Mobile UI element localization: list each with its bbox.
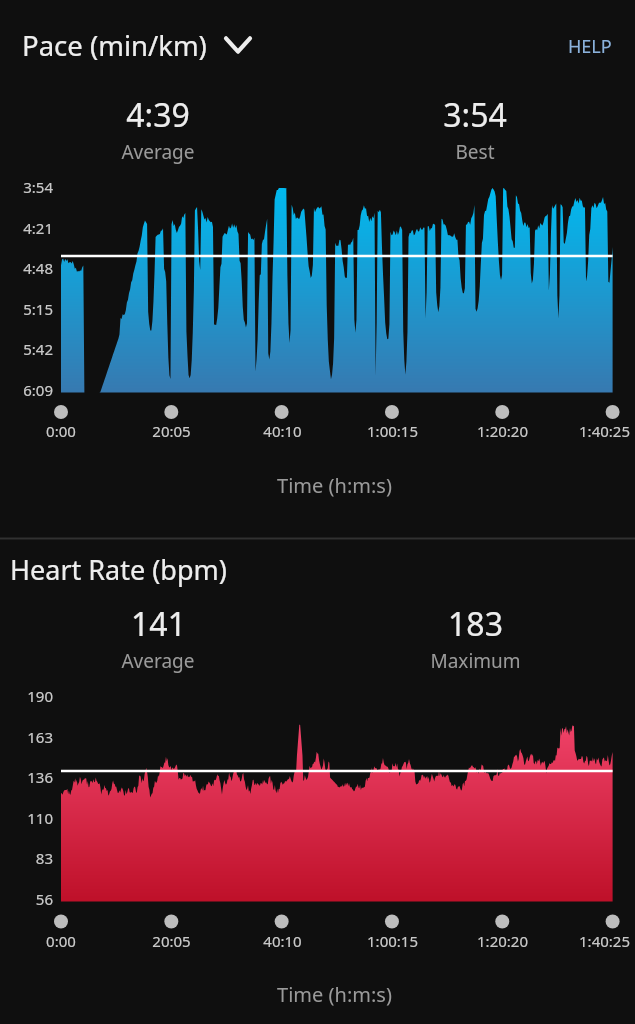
button[interactable]: Pace (min/km) (8, 21, 267, 69)
staticText: 1:40:25 (579, 421, 630, 441)
staticText: 20:05 (152, 421, 191, 441)
staticText: 20:05 (152, 931, 191, 951)
staticText: 40:10 (263, 931, 302, 951)
button[interactable]: Pace chart (61, 187, 612, 392)
staticText: 1:20:20 (477, 421, 528, 441)
staticText: 141 (131, 602, 186, 646)
staticText: 1:00:15 (367, 421, 418, 441)
staticText: 5:15 (23, 299, 53, 319)
staticText: 6:09 (23, 380, 53, 400)
staticText: 136 (27, 767, 53, 787)
staticText: 83 (35, 848, 53, 868)
staticText: 1:00:15 (367, 931, 418, 951)
staticText: 190 (27, 686, 53, 706)
staticText: Time (h:m:s) (277, 472, 392, 499)
staticText: Maximum (430, 648, 521, 674)
staticText: 5:42 (23, 339, 53, 359)
button[interactable]: Heart Rate (bpm) (0, 546, 243, 592)
staticText: Average (121, 648, 195, 674)
staticText: 4:39 (126, 93, 190, 137)
staticText: 1:40:25 (579, 931, 630, 951)
staticText: 0:00 (46, 421, 76, 441)
staticText: Heart Rate (bpm) (10, 551, 227, 588)
staticText: HELP (568, 34, 612, 59)
staticText: 40:10 (263, 421, 302, 441)
staticText: Pace (min/km) (22, 27, 207, 64)
staticText: 163 (27, 727, 53, 747)
staticText: 0:00 (46, 931, 76, 951)
staticText: Best (455, 139, 495, 165)
staticText: 183 (448, 602, 503, 646)
button[interactable]: Heart rate chart (61, 696, 612, 901)
staticText: 3:54 (23, 177, 53, 197)
staticText: 4:21 (23, 218, 53, 238)
button[interactable]: HELP (555, 23, 625, 69)
staticText: 110 (27, 808, 53, 828)
staticText: 4:48 (23, 258, 53, 278)
staticText: Average (121, 139, 195, 165)
staticText: 3:54 (443, 93, 507, 137)
staticText: Time (h:m:s) (277, 981, 392, 1008)
staticText: 1:20:20 (477, 931, 528, 951)
staticText: 56 (35, 889, 53, 909)
